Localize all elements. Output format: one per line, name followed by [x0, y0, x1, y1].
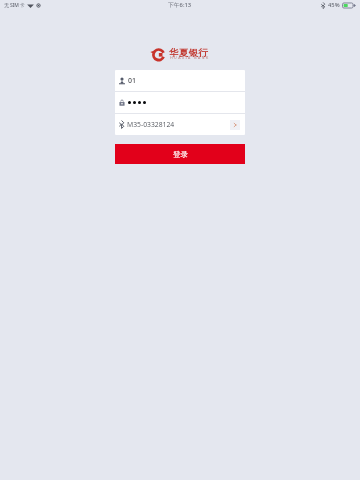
button[interactable] — [115, 92, 245, 113]
staticText: 无 SIM 卡 — [4, 2, 25, 9]
staticText: 华夏银行 — [169, 47, 208, 59]
staticText: 登录 — [173, 150, 188, 159]
staticText: M35-03328124 — [127, 120, 175, 129]
button[interactable]: 登录 — [115, 144, 245, 164]
staticText: 45% — [328, 1, 340, 9]
button[interactable]: M35-03328124 — [115, 114, 245, 135]
staticText: 01 — [128, 76, 137, 86]
staticText: 下午6:13 — [168, 1, 192, 9]
button[interactable]: 01 — [115, 70, 245, 91]
staticText: HUAXIA BANK — [170, 55, 210, 60]
button[interactable]: Select device — [230, 120, 240, 130]
